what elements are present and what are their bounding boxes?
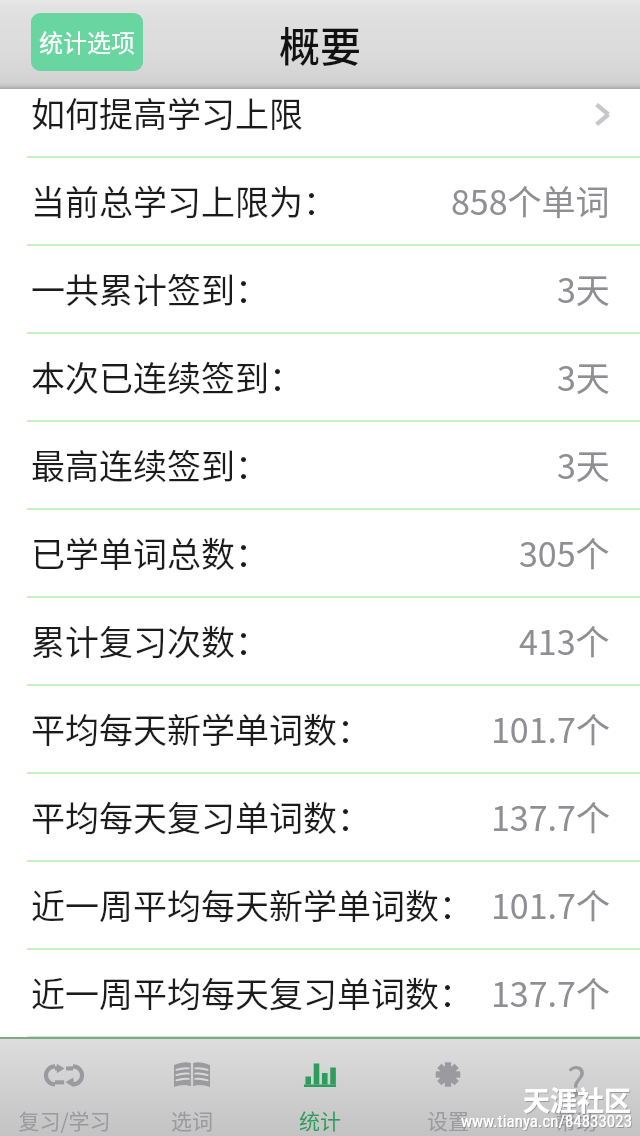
staticText: 天涯社区 <box>523 1080 631 1119</box>
staticText: 已学单词总数： <box>31 528 269 577</box>
staticText: 本次已连续签到： <box>31 352 303 401</box>
staticText: 101.7个 <box>491 704 610 753</box>
staticText: 858个单词 <box>451 176 610 225</box>
staticText: 如何提高学习上限 <box>31 88 303 137</box>
staticText: 设置 <box>427 1105 469 1135</box>
staticText: 最高连续签到： <box>31 440 269 489</box>
button[interactable]: 当前总学习上限为： <box>0 158 640 246</box>
button[interactable]: 平均每天复习单词数： <box>0 774 640 862</box>
staticText: 413个 <box>519 616 610 665</box>
staticText: 选词 <box>171 1105 213 1135</box>
button[interactable]: 本次已连续签到： <box>0 334 640 422</box>
other: 查看详情 <box>595 103 610 126</box>
staticText: 复习/学习 <box>18 1105 111 1135</box>
button[interactable]: 选词 <box>128 1039 256 1136</box>
staticText: 305个 <box>519 528 610 577</box>
button[interactable]: 统计 <box>256 1039 384 1136</box>
staticText: 3天 <box>557 264 610 313</box>
staticText: 概要 <box>279 14 361 73</box>
staticText: 平均每天复习单词数： <box>31 792 371 841</box>
button[interactable]: 帮助 <box>512 1039 640 1136</box>
button[interactable]: 近一周平均每天新学单词数： <box>0 862 640 950</box>
staticText: 101.7个 <box>491 880 610 929</box>
button[interactable]: 累计复习次数： <box>0 598 640 686</box>
button[interactable]: 近一周平均每天复习单词数： <box>0 950 640 1038</box>
staticText: 3天 <box>557 352 610 401</box>
staticText: 近一周平均每天复习单词数： <box>31 968 473 1017</box>
staticText: ? <box>567 1050 586 1108</box>
staticText: 平均每天新学单词数： <box>31 704 371 753</box>
staticText: www.tianya.cn/84833023 <box>462 1112 634 1132</box>
button[interactable]: 设置 <box>384 1039 512 1136</box>
staticText: 当前总学习上限为： <box>31 176 337 225</box>
button[interactable]: 平均每天新学单词数： <box>0 686 640 774</box>
button[interactable]: 统计选项 <box>31 13 143 71</box>
staticText: 统计 <box>299 1105 341 1135</box>
button[interactable]: 如何提高学习上限 <box>0 70 640 158</box>
staticText: 137.7个 <box>491 968 610 1017</box>
staticText: www.tianya.cn/84833023 <box>461 1111 633 1131</box>
staticText: 帮助 <box>555 1105 597 1135</box>
button[interactable]: 最高连续签到： <box>0 422 640 510</box>
staticText: 天涯社区 <box>524 1081 632 1120</box>
staticText: 137.7个 <box>491 792 610 841</box>
staticText: 一共累计签到： <box>31 264 269 313</box>
staticText: 近一周平均每天新学单词数： <box>31 880 473 929</box>
button[interactable]: 复习学习 <box>0 1039 128 1136</box>
button[interactable]: 已学单词总数： <box>0 510 640 598</box>
staticText: 累计复习次数： <box>31 616 269 665</box>
staticText: 3天 <box>557 440 610 489</box>
button[interactable]: 一共累计签到： <box>0 246 640 334</box>
staticText: 统计选项 <box>39 24 135 59</box>
